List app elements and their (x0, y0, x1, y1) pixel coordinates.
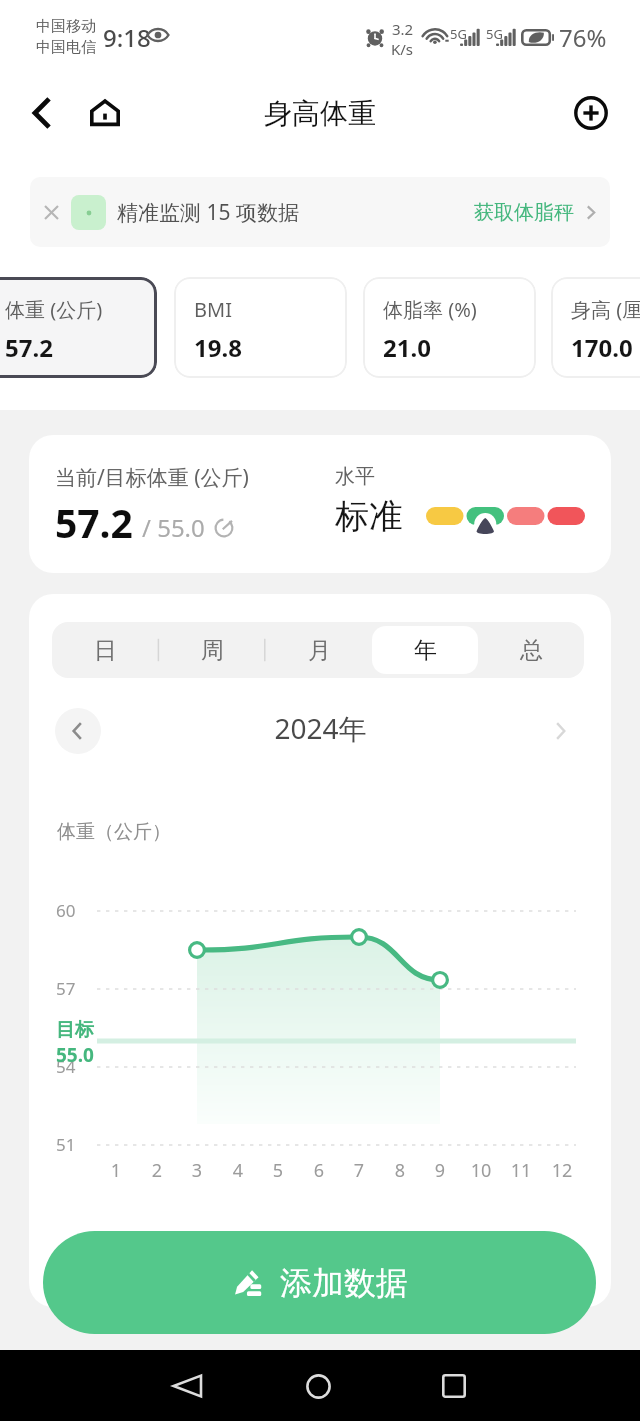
staticText: 水平 (335, 464, 375, 489)
button[interactable]: 当前/目标体重 (公斤) (29, 435, 611, 573)
staticText: 月 (308, 636, 331, 665)
button[interactable]: Close (36, 197, 66, 227)
staticText: 添加数据 (280, 1263, 408, 1303)
staticText: / 55.0 (142, 511, 205, 544)
staticText: 精准监测 15 项数据 (117, 198, 299, 227)
staticText: 体重（公斤） (57, 820, 171, 844)
staticText: 5G (450, 25, 467, 43)
staticText: 9:18 (103, 21, 151, 54)
staticText: 57.2 (5, 331, 53, 364)
staticText: 8 (386, 1158, 414, 1183)
staticText: K/s (391, 39, 414, 59)
button[interactable]: Add (567, 89, 615, 137)
staticText: 1 (102, 1158, 130, 1183)
staticText: 7 (345, 1158, 373, 1183)
staticText: 身高 (厘 (571, 296, 640, 323)
staticText: 10 (467, 1158, 495, 1183)
staticText: 标准 (335, 495, 403, 538)
staticText: 76% (559, 21, 607, 54)
button[interactable]: Home (81, 89, 129, 137)
staticText: 中国移动 (36, 17, 96, 36)
staticText: 中国电信 (36, 38, 96, 57)
button[interactable]: Recents (430, 1362, 478, 1410)
staticText: 目标 (56, 1018, 94, 1042)
staticText: 当前/目标体重 (公斤) (55, 463, 249, 492)
button[interactable]: 年 (372, 626, 478, 674)
staticText: 60 (56, 899, 76, 922)
staticText: 体重 (公斤) (5, 296, 103, 323)
staticText: 总 (520, 636, 543, 665)
staticText: 5G (486, 25, 503, 43)
staticText: 日 (94, 636, 117, 665)
button[interactable]: Close (30, 177, 610, 247)
staticText: 19.8 (194, 331, 242, 364)
staticText: 体脂率 (%) (383, 296, 477, 323)
button[interactable]: 身高 (厘 (551, 277, 640, 378)
staticText: 57.2 (55, 496, 133, 549)
staticText: 2 (143, 1158, 171, 1183)
button[interactable]: 周 (159, 626, 266, 674)
staticText: 4 (224, 1158, 252, 1183)
staticText: 6 (305, 1158, 333, 1183)
staticText: 12 (548, 1158, 576, 1183)
button[interactable]: Back (160, 1362, 212, 1410)
staticText: 周 (201, 636, 224, 665)
staticText: 51 (56, 1133, 76, 1156)
staticText: 21.0 (383, 331, 431, 364)
staticText: 11 (507, 1158, 535, 1183)
button[interactable]: 月 (266, 626, 372, 674)
staticText: 54 (56, 1055, 76, 1078)
button[interactable]: 添加数据 (43, 1231, 596, 1334)
staticText: 9 (426, 1158, 454, 1183)
staticText: 获取体脂秤 (474, 200, 574, 225)
button[interactable]: Next year (537, 708, 583, 754)
button[interactable]: Back (18, 89, 66, 137)
button[interactable]: BMI (174, 277, 347, 378)
staticText: 170.0 (571, 331, 633, 364)
staticText: 2024年 (274, 709, 367, 747)
staticText: 57 (56, 977, 76, 1000)
button[interactable]: Home (294, 1362, 342, 1410)
staticText: 3 (183, 1158, 211, 1183)
staticText: 身高体重 (264, 96, 376, 131)
button[interactable]: 日 (52, 626, 159, 674)
button[interactable]: 总 (478, 626, 584, 674)
button[interactable]: 体脂率 (%) (363, 277, 536, 378)
staticText: 年 (414, 636, 437, 665)
staticText: 55.0 (56, 1042, 94, 1068)
staticText: 5 (264, 1158, 292, 1183)
button[interactable]: 体重 (公斤) (0, 277, 157, 378)
staticText: 3.2 (392, 19, 414, 39)
staticText: BMI (194, 296, 232, 323)
button[interactable]: Previous year (55, 708, 101, 754)
